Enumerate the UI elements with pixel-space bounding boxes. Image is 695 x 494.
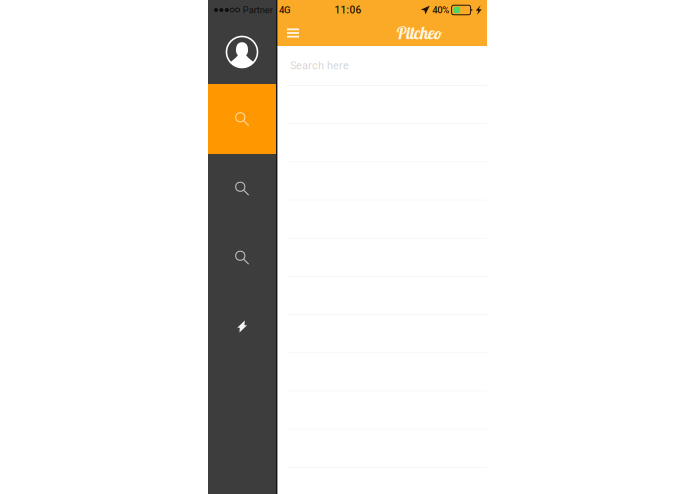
button[interactable]: Activity bbox=[208, 292, 276, 361]
button[interactable] bbox=[276, 467, 487, 494]
button[interactable]: Browse bbox=[208, 154, 276, 223]
button[interactable] bbox=[276, 238, 487, 276]
button[interactable] bbox=[276, 314, 487, 352]
button[interactable] bbox=[276, 429, 487, 467]
staticText: Pitcheo bbox=[396, 23, 442, 43]
button[interactable] bbox=[276, 391, 487, 429]
button[interactable] bbox=[276, 85, 487, 123]
button[interactable]: Search here bbox=[276, 46, 487, 85]
staticText: 11:06 bbox=[334, 4, 361, 16]
button[interactable] bbox=[276, 123, 487, 162]
staticText: 40% bbox=[432, 4, 449, 16]
button[interactable]: Profile bbox=[208, 20, 276, 84]
staticText: Search here bbox=[290, 59, 349, 72]
staticText: 4G bbox=[279, 4, 291, 16]
button[interactable]: Search bbox=[208, 84, 276, 154]
button[interactable] bbox=[276, 200, 487, 238]
button[interactable]: Open menu bbox=[276, 20, 310, 46]
button[interactable]: Explore bbox=[208, 223, 276, 292]
button[interactable] bbox=[276, 352, 487, 391]
button[interactable] bbox=[276, 161, 487, 200]
button[interactable] bbox=[276, 276, 487, 314]
staticText: Partner bbox=[243, 4, 273, 15]
